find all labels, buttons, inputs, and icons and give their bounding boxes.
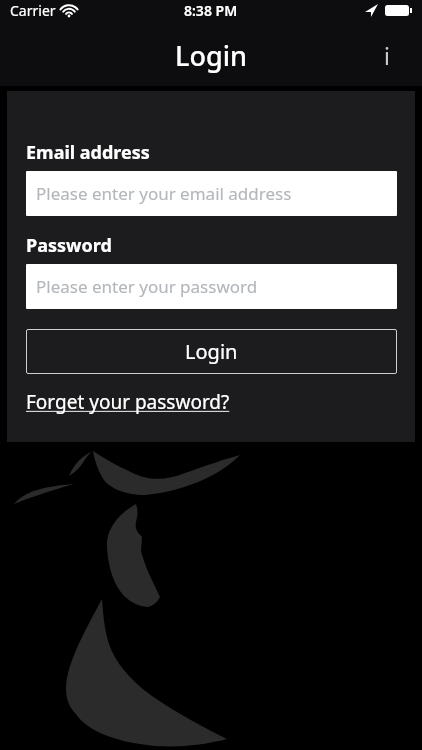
staticText: Please enter your email address bbox=[36, 182, 292, 205]
staticText: i bbox=[384, 40, 390, 66]
staticText: Login bbox=[175, 37, 247, 74]
button[interactable]: Please enter your email address bbox=[26, 171, 397, 216]
button[interactable]: i bbox=[374, 40, 400, 66]
staticText: 8:38 PM bbox=[184, 1, 238, 20]
button[interactable]: Please enter your password bbox=[26, 264, 397, 309]
staticText: Carrier bbox=[10, 1, 56, 20]
button[interactable]: Login bbox=[26, 329, 397, 374]
staticText: Please enter your password bbox=[36, 275, 258, 298]
staticText: Forget your password? bbox=[26, 389, 230, 415]
staticText: Email address bbox=[26, 140, 150, 165]
staticText: Login bbox=[185, 338, 238, 365]
staticText: Password bbox=[26, 233, 112, 258]
button[interactable]: Forget your password? bbox=[26, 389, 230, 415]
